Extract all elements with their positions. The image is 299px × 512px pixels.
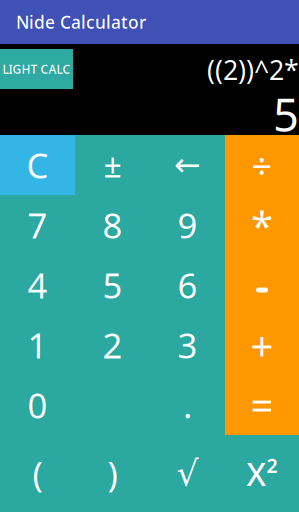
staticText: . [183,382,192,428]
staticText: √ [176,454,198,493]
staticText: 0 [27,382,47,428]
button[interactable]: + [225,315,299,375]
button[interactable]: 8 [75,195,150,255]
staticText: ÷ [251,141,272,189]
button[interactable]: . [150,375,225,435]
button[interactable]: C [0,135,75,195]
button[interactable]: ± [75,135,150,195]
staticText: ) [107,450,117,496]
staticText: 2 [102,322,122,368]
button[interactable]: 5 [75,255,150,315]
staticText: LIGHT CALC [2,61,70,77]
button[interactable]: 2 [75,315,150,375]
button[interactable]: ( [0,435,75,512]
staticText: ← [174,147,201,183]
button[interactable]: 7 [0,195,75,255]
staticText: ( [32,450,42,496]
staticText: ± [103,144,121,186]
staticText: X² [246,452,277,495]
staticText: 7 [27,202,47,248]
button[interactable]: ) [75,435,150,512]
staticText: 9 [177,202,197,248]
staticText: + [250,318,273,371]
staticText: ((2))^2* [207,52,299,87]
button[interactable]: X² [225,435,299,512]
button[interactable]: 0 [0,375,75,435]
button[interactable]: ← [150,135,225,195]
button[interactable]: 1 [0,315,75,375]
staticText: 4 [27,262,47,308]
staticText: 3 [177,322,197,368]
staticText: 5 [102,262,122,308]
staticText: 6 [177,262,197,308]
button[interactable]: = [225,375,299,435]
button[interactable]: Minus [225,255,299,315]
button[interactable]: 9 [150,195,225,255]
button[interactable]: LIGHT CALC [0,49,73,89]
staticText: 8 [102,202,122,248]
button[interactable]: 4 [0,255,75,315]
button[interactable]: 6 [150,255,225,315]
staticText: 1 [27,322,47,368]
staticText: 5 [273,84,299,144]
button[interactable]: ÷ [225,135,299,195]
staticText: = [250,378,273,431]
staticText: C [26,142,48,188]
button[interactable]: * [225,195,299,255]
staticText: * [251,198,273,251]
staticText: Nide Calculator [16,10,146,33]
button[interactable]: 3 [150,315,225,375]
button[interactable]: √ [150,435,225,512]
